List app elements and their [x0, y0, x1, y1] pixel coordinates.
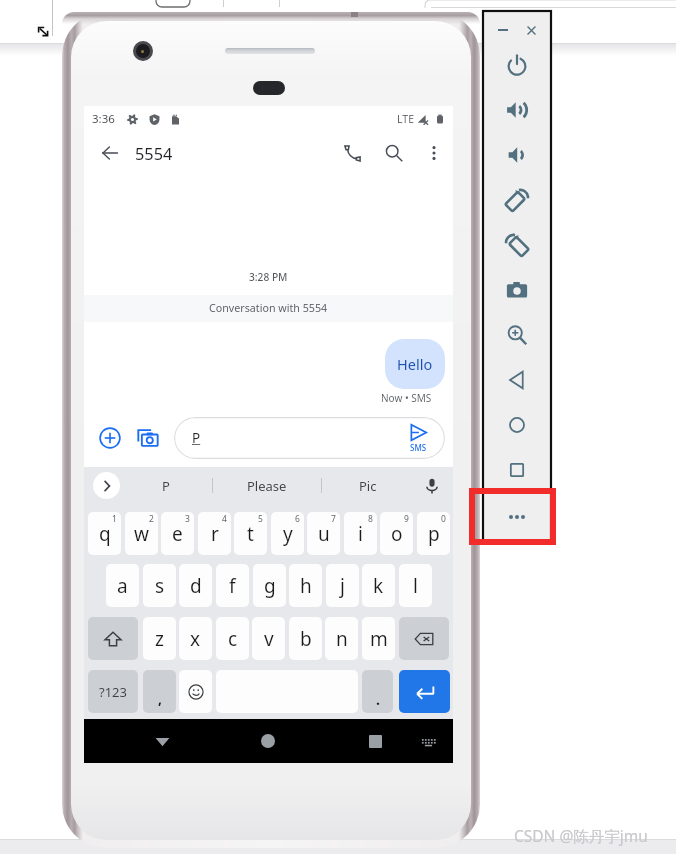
staticText: P	[192, 429, 201, 447]
button[interactable]: Search	[373, 132, 415, 174]
button[interactable]: m	[362, 617, 395, 660]
staticText: 6	[295, 513, 300, 525]
button[interactable]: Home	[484, 402, 550, 447]
staticText: h	[300, 573, 312, 599]
button[interactable]: e	[161, 512, 194, 555]
staticText: Now • SMS	[381, 391, 432, 405]
staticText: a	[117, 573, 128, 599]
staticText: t	[247, 521, 254, 547]
button[interactable]: More suggestions	[93, 472, 120, 499]
button[interactable]: w	[125, 512, 158, 555]
button[interactable]: z	[143, 617, 176, 660]
button[interactable]: Emoji	[179, 670, 212, 713]
staticText: y	[283, 521, 293, 547]
staticText: s	[155, 573, 165, 599]
button[interactable]: More options	[413, 132, 455, 174]
button[interactable]: Take screenshot	[484, 267, 550, 312]
staticText: SMS	[410, 442, 427, 453]
button[interactable]: t	[234, 512, 267, 555]
button[interactable]: ?123	[88, 670, 138, 713]
button[interactable]: Volume up	[484, 87, 550, 132]
button[interactable]: Home	[248, 719, 288, 763]
button[interactable]: Camera	[135, 425, 161, 451]
staticText: i	[358, 521, 363, 547]
staticText: n	[336, 626, 348, 652]
staticText: ?123	[99, 683, 127, 701]
button[interactable]: ,	[143, 670, 176, 713]
button[interactable]: q	[88, 512, 121, 555]
button[interactable]: Shift	[88, 617, 138, 660]
button[interactable]: b	[289, 617, 322, 660]
staticText: q	[99, 521, 111, 547]
button[interactable]: a	[106, 564, 139, 607]
staticText: m	[370, 626, 388, 652]
button[interactable]: Zoom	[484, 312, 550, 357]
button[interactable]: s	[143, 564, 176, 607]
button[interactable]: Minimize	[492, 19, 514, 41]
button[interactable]: Extended controls	[484, 492, 550, 542]
button[interactable]: c	[216, 617, 249, 660]
button[interactable]: n	[325, 617, 358, 660]
button[interactable]: d	[179, 564, 212, 607]
button[interactable]: Backspace	[399, 617, 449, 660]
staticText: o	[391, 521, 403, 547]
button[interactable]: Hello	[385, 339, 445, 389]
button[interactable]: Call	[331, 132, 373, 174]
button[interactable]: p	[417, 512, 450, 555]
button[interactable]: Add attachment	[97, 425, 123, 451]
staticText: v	[264, 626, 274, 652]
button[interactable]: Back	[142, 719, 182, 763]
staticText: e	[172, 521, 183, 547]
button[interactable]: P	[174, 417, 445, 459]
button[interactable]: Enter	[399, 670, 450, 713]
button[interactable]: h	[289, 564, 322, 607]
button[interactable]: Please	[247, 477, 287, 494]
button[interactable]: v	[252, 617, 285, 660]
button[interactable]: Voice input	[418, 472, 445, 499]
button[interactable]: u	[307, 512, 340, 555]
button[interactable]: Rotate left	[484, 177, 550, 222]
staticText: Conversation with 5554	[209, 301, 328, 316]
button[interactable]: Back	[484, 357, 550, 402]
button[interactable]: x	[179, 617, 212, 660]
button[interactable]: g	[253, 564, 286, 607]
staticText: j	[340, 573, 345, 599]
staticText: 3	[185, 513, 190, 525]
button[interactable]: Back	[89, 132, 131, 174]
staticText: Hello	[397, 354, 433, 374]
button[interactable]: y	[271, 512, 304, 555]
button[interactable]: Recents	[355, 719, 395, 763]
staticText: f	[229, 573, 236, 599]
button[interactable]: P	[162, 477, 170, 494]
button[interactable]: l	[399, 564, 432, 607]
button[interactable]: Hide keyboard	[408, 719, 448, 763]
staticText: 7	[331, 513, 336, 525]
staticText: k	[373, 573, 384, 599]
button[interactable]: Close	[520, 19, 542, 41]
button[interactable]: Pic	[359, 477, 377, 494]
button[interactable]: j	[326, 564, 359, 607]
staticText: 1	[112, 513, 117, 525]
button[interactable]: i	[344, 512, 377, 555]
staticText: w	[134, 521, 149, 547]
staticText: l	[413, 573, 418, 599]
staticText: g	[264, 573, 276, 599]
staticText: ,	[158, 689, 162, 708]
staticText: 3:28 PM	[249, 270, 288, 284]
button[interactable]: k	[362, 564, 395, 607]
button[interactable]: Send SMS	[401, 424, 435, 453]
staticText: 8	[368, 513, 373, 525]
button[interactable]: o	[380, 512, 413, 555]
staticText: 0	[441, 513, 446, 525]
button[interactable]: Volume down	[484, 132, 550, 177]
button[interactable]: .	[362, 670, 393, 713]
staticText: 3:36	[92, 111, 115, 127]
button[interactable]: Rotate right	[484, 222, 550, 267]
button[interactable]: f	[216, 564, 249, 607]
button[interactable]: r	[198, 512, 231, 555]
staticText: r	[211, 521, 219, 547]
staticText: 2	[149, 513, 154, 525]
button[interactable]: Power	[484, 42, 550, 87]
button[interactable]: Overview	[484, 447, 550, 492]
